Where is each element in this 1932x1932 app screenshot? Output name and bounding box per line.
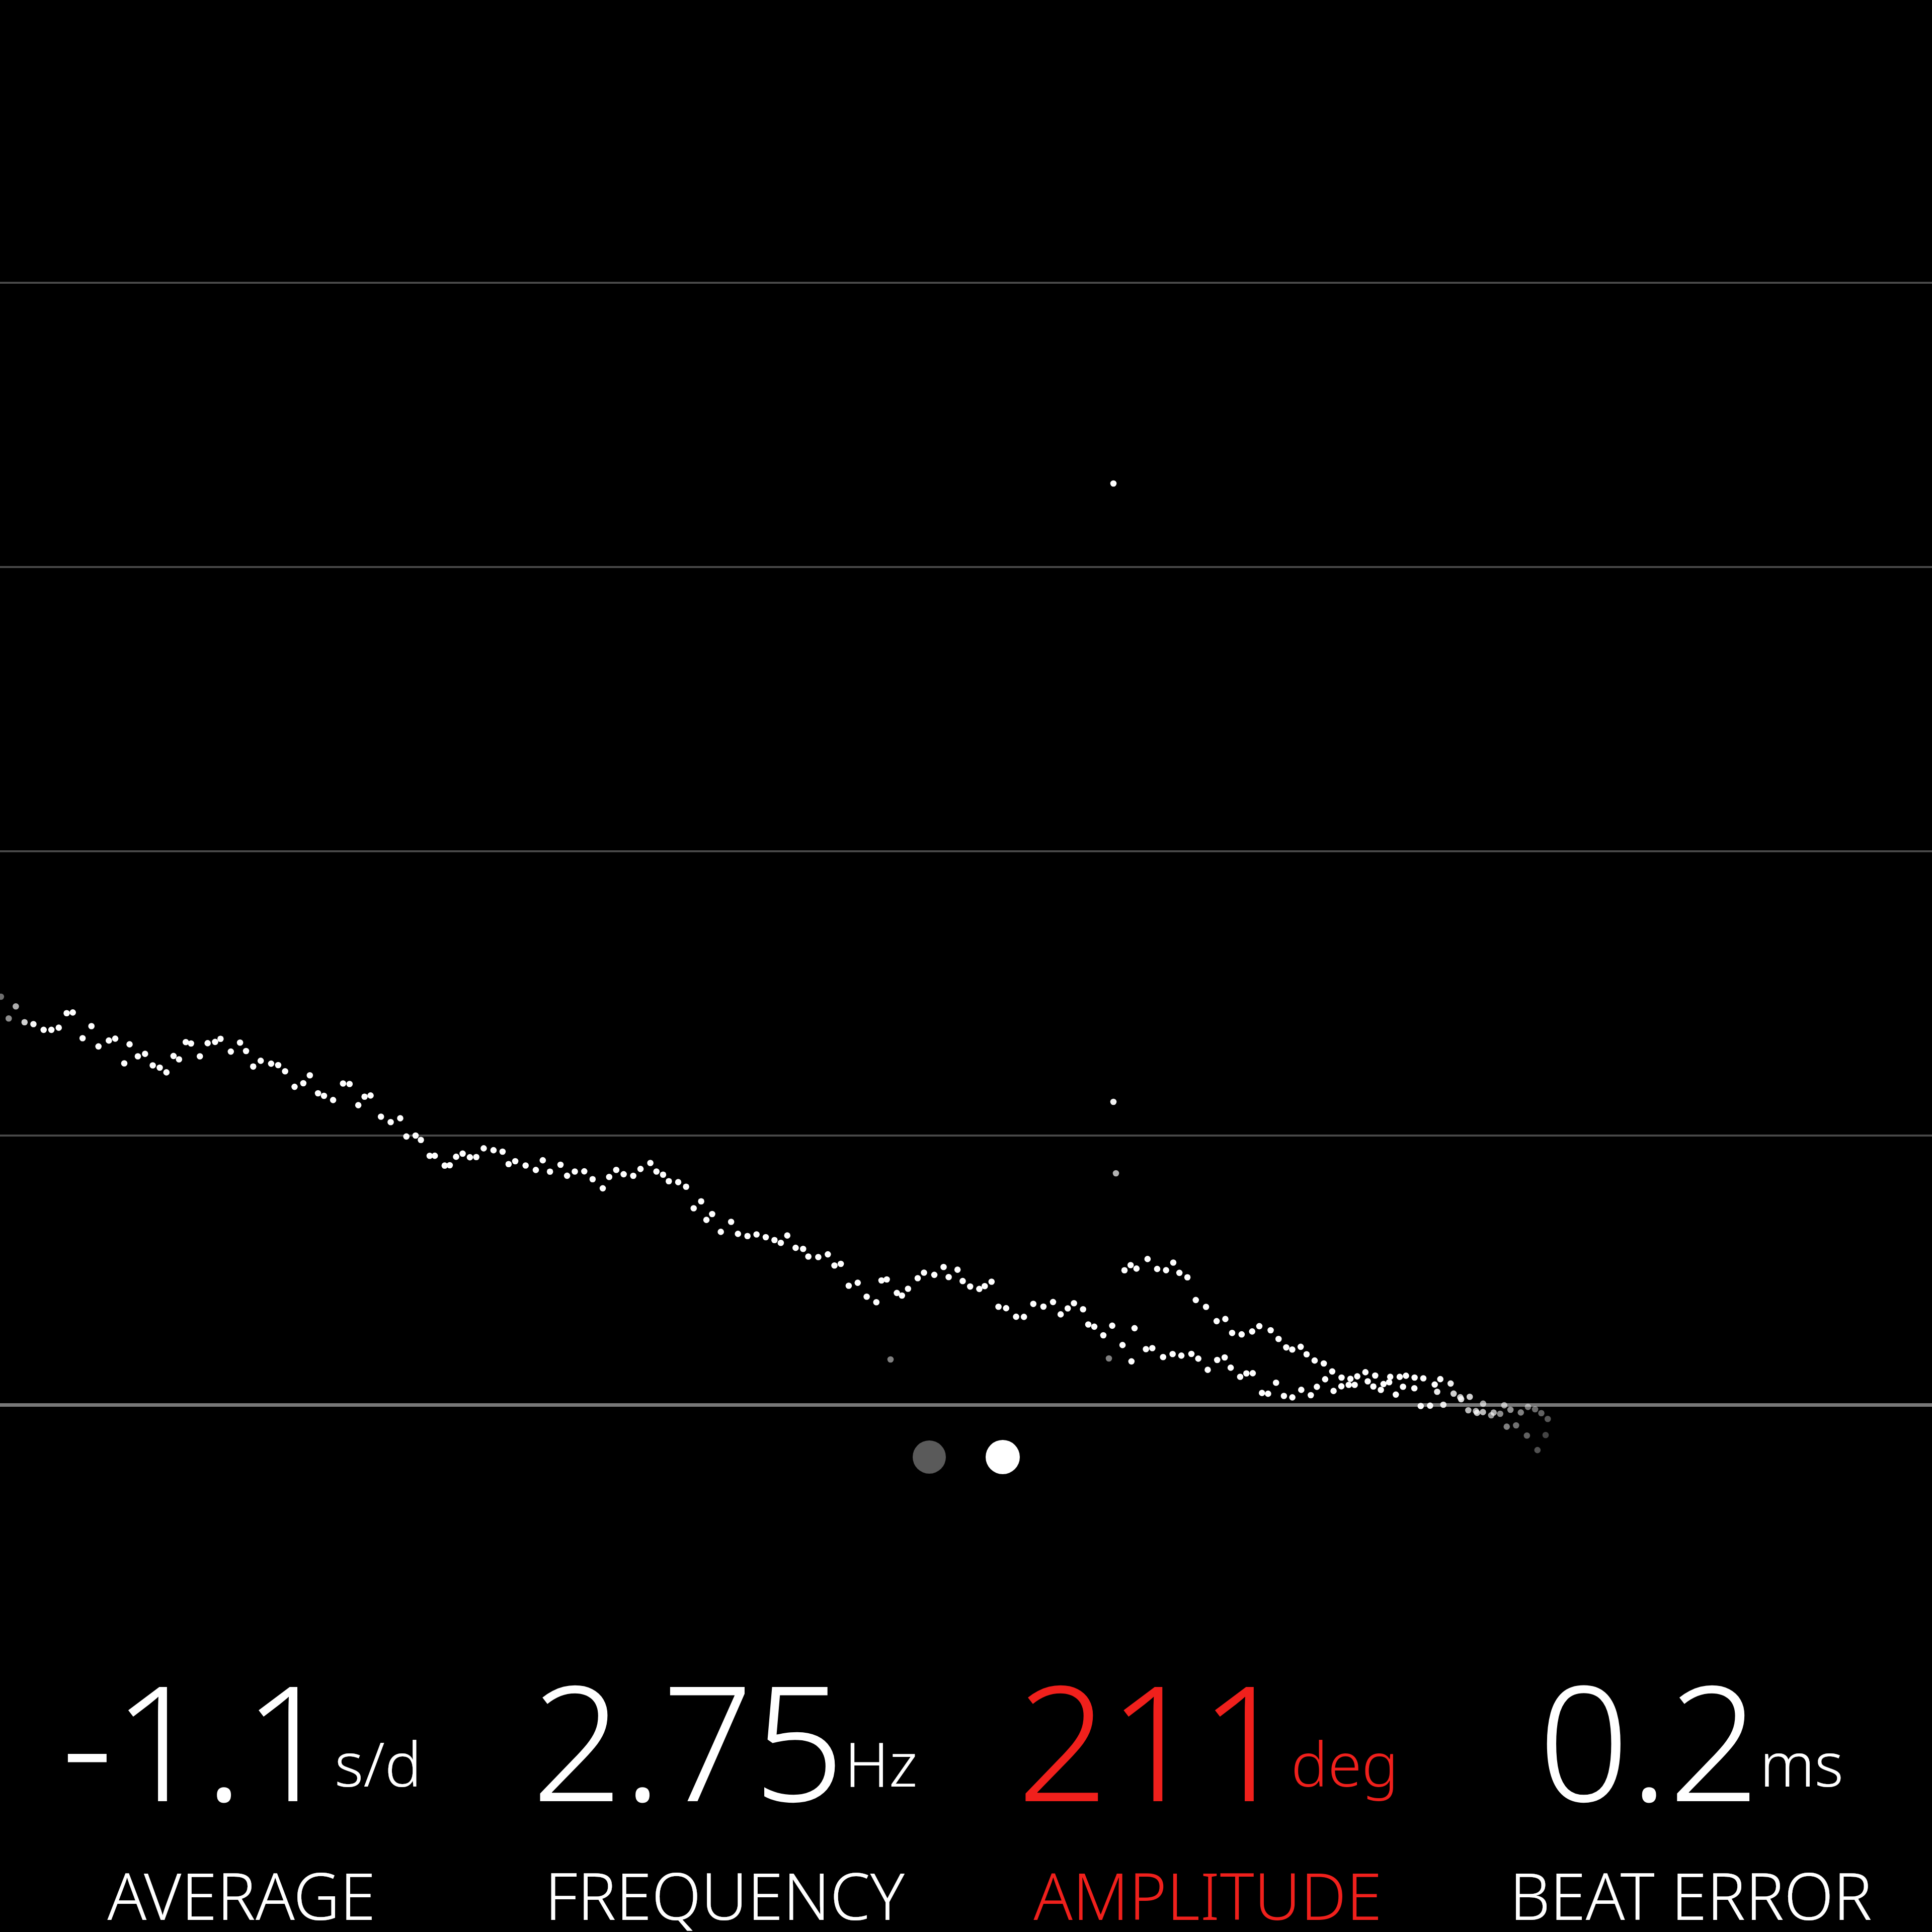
staticText: AVERAGE — [107, 1851, 376, 1932]
button[interactable]: 2.75Hz — [483, 1630, 966, 1932]
staticText: 0.2ms — [1538, 1630, 1843, 1848]
button[interactable]: 0.2ms — [1449, 1630, 1932, 1932]
button[interactable]: Page 1 — [913, 1440, 946, 1474]
staticText: BEAT ERROR — [1509, 1851, 1872, 1932]
staticText: FREQUENCY — [545, 1851, 905, 1932]
staticText: AMPLITUDE — [1033, 1851, 1382, 1932]
button[interactable]: -1.1s/d — [0, 1630, 483, 1932]
button[interactable]: Page 2, selected — [986, 1440, 1020, 1474]
staticText: 211deg — [1017, 1630, 1399, 1848]
button[interactable]: 211deg — [966, 1630, 1449, 1932]
staticText: 2.75Hz — [531, 1630, 918, 1848]
staticText: -1.1s/d — [61, 1630, 422, 1848]
